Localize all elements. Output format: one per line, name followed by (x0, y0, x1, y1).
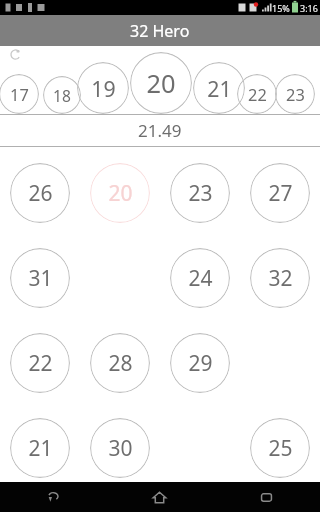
staticText: 24 (188, 264, 213, 293)
staticText: 28 (108, 349, 133, 378)
button[interactable]: Refresh (7, 46, 23, 62)
staticText: 18 (53, 85, 71, 106)
staticText: 27 (268, 179, 293, 208)
button[interactable]: 24 (170, 248, 230, 308)
staticText: 21 (28, 434, 53, 463)
staticText: 21 (207, 74, 232, 103)
button[interactable]: 23 (170, 163, 230, 223)
button[interactable]: 29 (170, 333, 230, 393)
button[interactable]: 23 (275, 74, 315, 114)
staticText: 17 (10, 83, 29, 105)
button[interactable]: 20 (90, 163, 150, 223)
staticText: 32 Hero (130, 20, 190, 42)
button[interactable]: 21 (193, 62, 245, 114)
staticText: 23 (188, 179, 213, 208)
button[interactable]: 30 (90, 418, 150, 478)
button[interactable]: Recent apps (213, 482, 320, 512)
button[interactable]: 21 (10, 418, 70, 478)
staticText: 20 (146, 66, 176, 101)
button[interactable]: 17 (0, 74, 39, 114)
staticText: 20 (108, 179, 133, 208)
staticText: 31 (28, 264, 53, 293)
button[interactable]: 26 (10, 163, 70, 223)
button[interactable]: 22 (237, 74, 277, 114)
staticText: 19 (91, 74, 116, 103)
button[interactable]: Back (0, 482, 106, 512)
staticText: 22 (248, 83, 267, 105)
button[interactable]: 32 (250, 248, 310, 308)
button[interactable]: 18 (43, 76, 81, 114)
button[interactable]: Home (106, 482, 213, 512)
button[interactable]: 19 (77, 62, 129, 114)
staticText: 32 (268, 264, 293, 293)
button[interactable]: 31 (10, 248, 70, 308)
staticText: 30 (108, 434, 133, 463)
staticText: 29 (188, 349, 213, 378)
staticText: 21.49 (138, 119, 182, 142)
staticText: 23 (286, 83, 305, 105)
staticText: 22 (28, 349, 53, 378)
staticText: 3:16 (300, 2, 318, 14)
button[interactable]: 28 (90, 333, 150, 393)
staticText: 15% (272, 2, 290, 14)
button[interactable]: 27 (250, 163, 310, 223)
button[interactable]: 22 (10, 333, 70, 393)
button[interactable]: 25 (250, 418, 310, 478)
staticText: 26 (28, 179, 53, 208)
staticText: 25 (268, 434, 293, 463)
button[interactable]: 20 (130, 52, 192, 114)
